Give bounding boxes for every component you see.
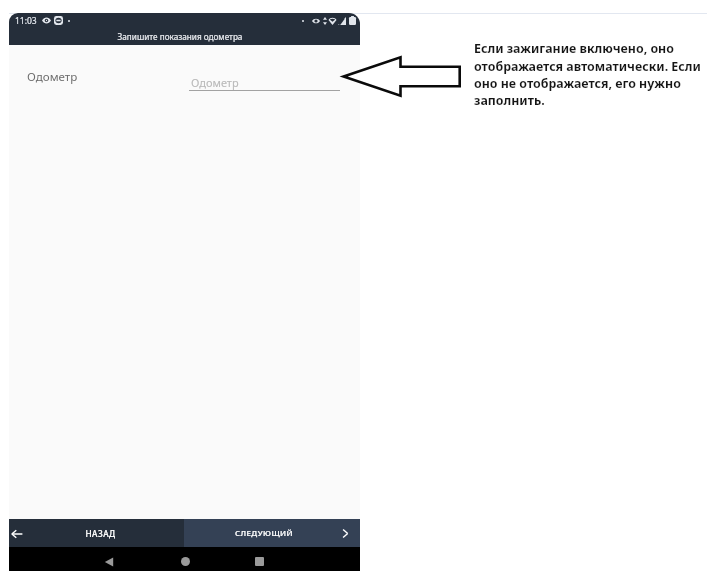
staticText: Если зажигание включено, оно отображаетс… — [474, 40, 706, 108]
button[interactable]: Recents — [255, 557, 264, 566]
staticText: НАЗАД — [21, 528, 180, 539]
staticText: Запишите показания одометра — [9, 31, 351, 42]
staticText: Одометр — [27, 69, 78, 85]
button[interactable]: Home — [181, 557, 190, 566]
other: Следующий — [340, 528, 351, 539]
button[interactable]: Back — [104, 557, 114, 567]
other: Назад — [11, 528, 23, 540]
staticText: СЛЕДУЮЩИЙ — [191, 528, 337, 539]
staticText: 11:03 — [15, 15, 37, 27]
button[interactable]: Одометр — [189, 75, 340, 93]
staticText: Одометр — [191, 75, 239, 90]
button[interactable]: СЛЕДУЮЩИЙ — [184, 519, 360, 548]
button[interactable]: Назад — [9, 519, 184, 548]
